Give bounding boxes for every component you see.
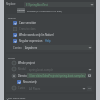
button[interactable]: Select — [12, 60, 94, 66]
staticText: Help — [45, 39, 51, 43]
button[interactable]: Toggle — [13, 27, 17, 31]
button[interactable]: All Places — [27, 86, 86, 91]
staticText: /Users/dev/IdeaProjects/spring-boot-samp… — [29, 74, 86, 78]
staticText: spring-boot-sample — [29, 68, 53, 72]
button[interactable]: Toggle — [6, 20, 94, 26]
button[interactable]: Anywhere — [23, 45, 92, 50]
staticText: Recursively — [23, 80, 37, 84]
staticText: $1SpringBootTest — [26, 3, 48, 7]
button[interactable]: Toggle — [17, 80, 21, 84]
button[interactable]: $1SpringBootTest — [24, 2, 94, 7]
staticText: Whole project — [18, 61, 35, 65]
staticText: Preview (31 matches in 24 files) — [27, 9, 62, 12]
staticText: All Places — [29, 87, 41, 91]
button[interactable]: Browse — [87, 73, 92, 78]
staticText: Whole words only (in Native) — [19, 33, 54, 37]
button[interactable]: Select — [12, 61, 16, 65]
button[interactable]: Select — [12, 67, 16, 71]
staticText: Scope — [8, 56, 16, 59]
staticText: Search — [8, 16, 16, 19]
staticText: Module — [18, 67, 27, 71]
staticText: Directory: — [18, 74, 27, 78]
button[interactable]: Toggle — [6, 26, 94, 32]
button[interactable]: spring-boot-sample — [27, 67, 92, 72]
button[interactable]: Toggle — [13, 21, 17, 25]
button[interactable]: Toggle — [6, 32, 94, 38]
staticText: Cross to class — [19, 27, 36, 31]
staticText: Regular expression — [19, 39, 43, 43]
staticText: Context: — [13, 46, 22, 50]
staticText: Case sensitive — [19, 21, 37, 25]
button[interactable]: Toggle — [13, 39, 17, 43]
button[interactable]: More — [87, 86, 92, 91]
button[interactable]: Toggle — [6, 79, 94, 85]
staticText: File name filter — [8, 96, 26, 99]
staticText: Update — [17, 9, 25, 12]
button[interactable]: Select — [12, 86, 16, 90]
button[interactable]: /Users/dev/IdeaProjects/spring-boot-samp… — [27, 73, 86, 78]
staticText: Custom: — [18, 86, 27, 90]
button[interactable]: Toggle — [13, 33, 17, 37]
button[interactable]: Select — [12, 74, 16, 78]
button[interactable]: Toggle — [6, 38, 94, 44]
staticText: Anywhere — [25, 46, 38, 50]
button[interactable]: Update — [17, 8, 25, 13]
staticText: Replace with: — [6, 2, 22, 6]
